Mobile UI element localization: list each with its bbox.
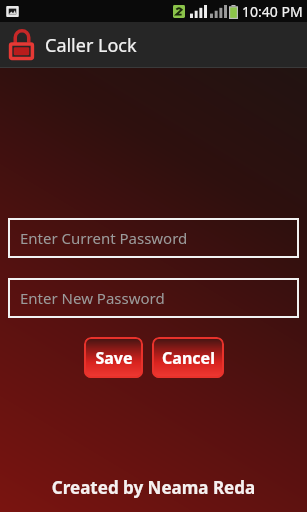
staticText: Save [95, 347, 133, 369]
staticText: 10:40 PM [242, 2, 303, 21]
staticText: Enter New Password [20, 288, 165, 308]
staticText: Enter Current Password [20, 228, 188, 248]
button[interactable]: Enter Current Password [8, 218, 299, 258]
button[interactable]: Save [84, 337, 143, 378]
button[interactable]: Enter New Password [8, 278, 299, 318]
button[interactable]: Cancel [152, 337, 224, 378]
staticText: Cancel [162, 347, 215, 369]
staticText: Created by Neama Reda [0, 476, 307, 499]
staticText: Caller Lock [45, 33, 137, 58]
